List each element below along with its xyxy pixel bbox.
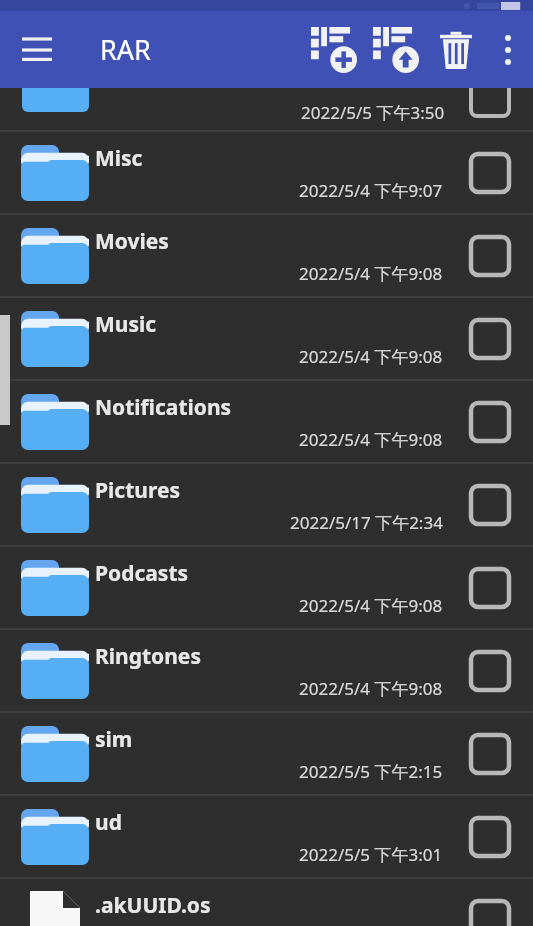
staticText: 2022/5/4 下午9:08 — [299, 428, 443, 451]
staticText: Music — [95, 310, 157, 339]
button[interactable]: Select item — [469, 76, 511, 118]
button[interactable]: Podcasts — [0, 547, 533, 628]
button[interactable]: Select sim — [469, 733, 511, 775]
staticText: 2022/5/4 下午9:08 — [299, 677, 443, 700]
staticText: 2022/5/17 下午2:34 — [290, 511, 443, 534]
button[interactable]: Music — [0, 298, 533, 379]
button[interactable]: .akUUID.os — [0, 879, 533, 926]
staticText: 2022/5/4 下午9:08 — [299, 262, 443, 285]
staticText: 2022/5/5 下午2:15 — [299, 760, 443, 783]
button[interactable]: Select ud — [469, 816, 511, 858]
button[interactable]: Delete — [427, 21, 485, 79]
button[interactable]: Select Ringtones — [469, 650, 511, 692]
button[interactable]: Select Pictures — [469, 484, 511, 526]
button[interactable]: Select Podcasts — [469, 567, 511, 609]
staticText: RAR — [100, 31, 151, 68]
button[interactable]: Select Notifications — [469, 401, 511, 443]
staticText: Movies — [95, 227, 169, 256]
staticText: 2022/5/5 下午3:01 — [299, 843, 443, 866]
button[interactable]: Add to archive — [303, 19, 365, 81]
staticText: Notifications — [95, 393, 232, 422]
button[interactable]: Extract archive — [365, 19, 427, 81]
button[interactable]: 2022/5/5 下午3:50 — [0, 88, 533, 130]
staticText: Misc — [95, 144, 143, 173]
button[interactable]: sim — [0, 713, 533, 794]
staticText: 2022/5/4 下午9:08 — [299, 345, 443, 368]
staticText: 2022/5/4 下午9:07 — [299, 179, 443, 202]
button[interactable]: Misc — [0, 132, 533, 213]
staticText: Ringtones — [95, 642, 201, 671]
staticText: .akUUID.os — [95, 891, 211, 920]
button[interactable]: Select Music — [469, 318, 511, 360]
button[interactable]: Select Movies — [469, 235, 511, 277]
button[interactable]: More options — [485, 27, 531, 73]
button[interactable]: ud — [0, 796, 533, 877]
button[interactable]: Pictures — [0, 464, 533, 545]
button[interactable]: Ringtones — [0, 630, 533, 711]
button[interactable]: Open navigation drawer — [8, 21, 66, 79]
staticText: sim — [95, 725, 133, 754]
button[interactable]: Movies — [0, 215, 533, 296]
button[interactable]: Select Misc — [469, 152, 511, 194]
button[interactable]: Select .akUUID.os — [469, 899, 511, 926]
staticText: 2022/5/4 下午9:08 — [299, 594, 443, 617]
staticText: ud — [95, 808, 122, 837]
button[interactable]: Notifications — [0, 381, 533, 462]
staticText: Pictures — [95, 476, 180, 505]
staticText: Podcasts — [95, 559, 189, 588]
staticText: 2022/5/5 下午3:50 — [301, 101, 445, 124]
